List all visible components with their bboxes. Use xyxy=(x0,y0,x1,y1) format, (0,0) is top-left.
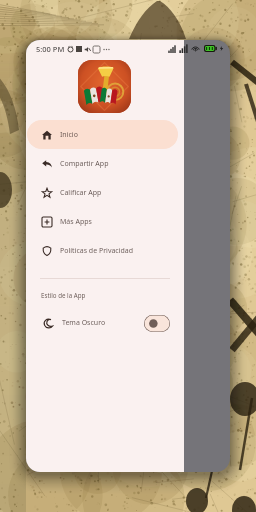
button[interactable]: Tema Oscuro xyxy=(144,315,170,332)
button[interactable]: Inicio xyxy=(27,120,178,149)
button[interactable]: Más Apps xyxy=(27,207,178,236)
staticText: Compartir App xyxy=(60,159,109,169)
button[interactable]: App icon xyxy=(78,60,131,113)
staticText: Estilo de la App xyxy=(41,291,86,299)
button[interactable]: Políticas de Privacidad xyxy=(27,236,178,265)
staticText: 5:00 PM xyxy=(36,44,65,54)
button[interactable]: Compartir App xyxy=(27,149,178,178)
button[interactable]: Calificar App xyxy=(27,178,178,207)
staticText: Calificar App xyxy=(60,188,102,198)
staticText: Más Apps xyxy=(60,217,92,227)
staticText: Tema Oscuro xyxy=(62,318,106,328)
staticText: Políticas de Privacidad xyxy=(60,246,134,256)
staticText: Inicio xyxy=(60,130,78,140)
